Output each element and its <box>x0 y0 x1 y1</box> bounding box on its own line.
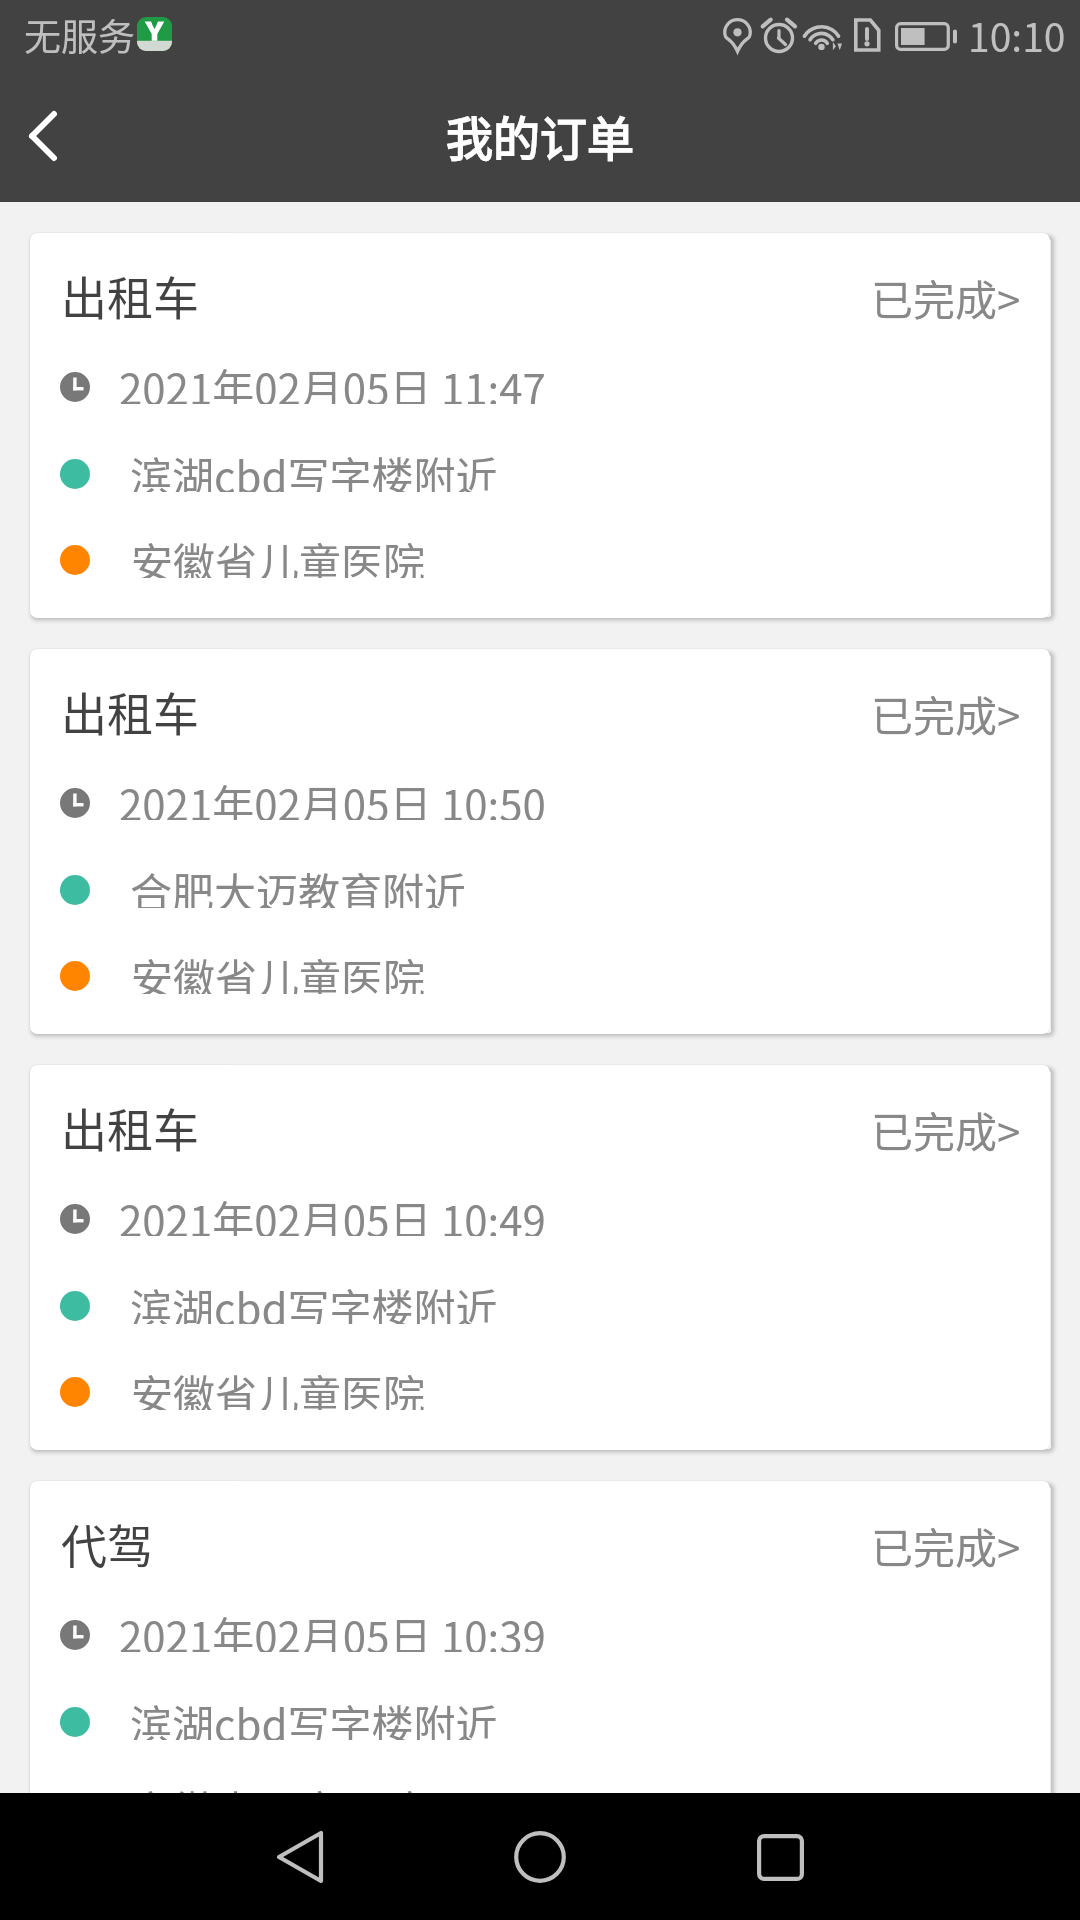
staticText: 2021年02月05日 10:50 <box>119 772 546 820</box>
button[interactable]: 代驾 <box>30 1481 1050 1866</box>
staticText: 无服务 <box>24 8 135 62</box>
staticText: 已完成> <box>871 267 1021 328</box>
staticText: 已完成> <box>871 1099 1021 1160</box>
button[interactable]: Back <box>240 1797 360 1917</box>
staticText: 滨湖cbd写字楼附近 <box>130 1692 498 1740</box>
staticText: 安徽省儿童医院 <box>131 1362 426 1410</box>
staticText: 2021年02月05日 10:39 <box>119 1604 546 1652</box>
staticText: 出租车 <box>61 1094 199 1161</box>
staticText: 滨湖cbd写字楼附近 <box>130 444 498 492</box>
staticText: 合肥大迈教育附近 <box>130 860 467 908</box>
staticText: 已完成> <box>871 1515 1021 1576</box>
button[interactable]: Home <box>480 1797 600 1917</box>
staticText: 滨湖cbd写字楼附近 <box>130 1276 498 1324</box>
button[interactable]: Recents <box>720 1797 840 1917</box>
button[interactable]: 出租车 <box>30 233 1050 618</box>
staticText: 10:10 <box>968 7 1066 63</box>
staticText: 出租车 <box>61 678 199 745</box>
staticText: 安徽省儿童医院 <box>131 530 426 578</box>
staticText: 2021年02月05日 10:49 <box>119 1188 546 1236</box>
staticText: 已完成> <box>871 683 1021 744</box>
button[interactable]: 出租车 <box>30 1065 1050 1450</box>
button[interactable]: Back <box>0 68 104 202</box>
staticText: 我的订单 <box>446 101 634 169</box>
staticText: 安徽省儿童医院 <box>131 1778 426 1826</box>
staticText: 代驾 <box>61 1510 153 1577</box>
button[interactable]: 出租车 <box>30 649 1050 1034</box>
staticText: 出租车 <box>61 262 199 329</box>
staticText: 2021年02月05日 11:47 <box>119 356 546 404</box>
staticText: 安徽省儿童医院 <box>131 946 426 994</box>
